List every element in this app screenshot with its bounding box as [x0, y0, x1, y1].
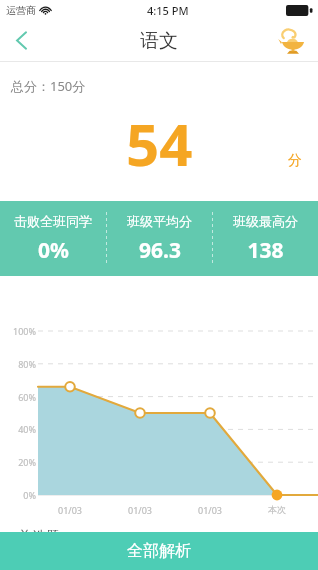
button[interactable]: Magic lamp: [274, 22, 312, 60]
staticText: 运营商: [6, 4, 36, 17]
staticText: 分: [288, 152, 302, 170]
staticText: 138: [247, 236, 284, 265]
staticText: 20%: [4, 456, 36, 468]
staticText: 0%: [4, 489, 36, 501]
staticText: 总分：150分: [11, 77, 86, 95]
button[interactable]: Back: [0, 20, 42, 61]
staticText: 54: [126, 104, 193, 183]
button[interactable]: 单选题: [18, 528, 60, 532]
button[interactable]: 全部解析: [0, 532, 318, 570]
button[interactable]: 击败全班同学: [0, 209, 106, 269]
staticText: 0%: [38, 236, 69, 265]
staticText: 全部解析: [127, 541, 191, 561]
staticText: 班级平均分: [127, 213, 192, 229]
staticText: 4:15 PM: [147, 3, 189, 18]
staticText: 01/03: [53, 504, 87, 516]
staticText: 01/03: [193, 504, 227, 516]
staticText: 60%: [4, 391, 36, 403]
button[interactable]: 班级平均分: [107, 209, 212, 269]
staticText: 96.3: [139, 236, 181, 265]
staticText: 本次: [260, 504, 294, 515]
button[interactable]: 班级最高分: [213, 209, 318, 269]
staticText: 80%: [4, 358, 36, 370]
staticText: 01/03: [123, 504, 157, 516]
staticText: 班级最高分: [233, 213, 298, 229]
staticText: 40%: [4, 423, 36, 435]
staticText: 100%: [4, 325, 36, 337]
staticText: 语文: [140, 29, 178, 53]
staticText: 击败全班同学: [14, 213, 92, 229]
